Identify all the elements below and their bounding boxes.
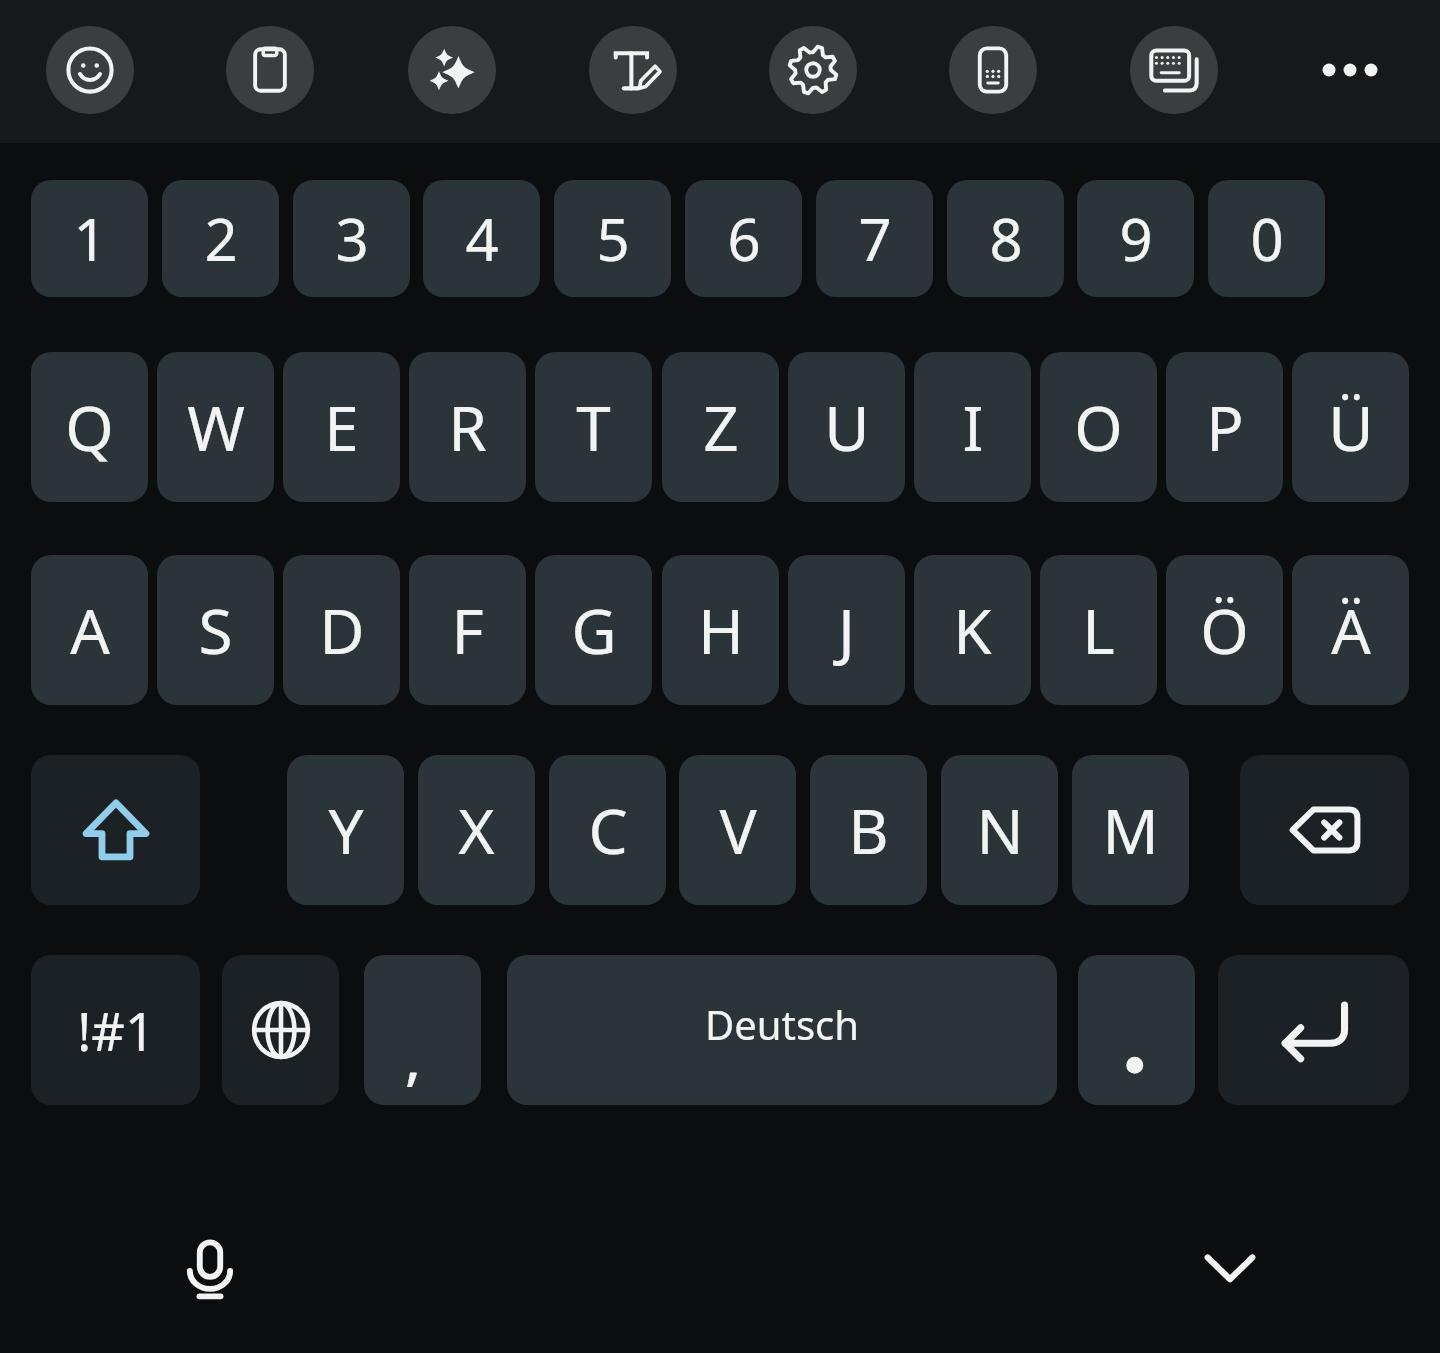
staticText: C [588, 788, 628, 872]
staticText: R [448, 385, 487, 469]
button[interactable]: , [364, 955, 481, 1105]
button[interactable]: J [788, 555, 905, 705]
button[interactable]: Voice input [154, 1214, 266, 1326]
button[interactable]: X [418, 755, 535, 905]
staticText: 2 [204, 199, 238, 278]
staticText: Q [65, 385, 114, 469]
button[interactable]: N [941, 755, 1058, 905]
button[interactable]: M [1072, 755, 1189, 905]
button[interactable]: Settings [769, 26, 857, 114]
button[interactable]: 9 [1077, 180, 1194, 297]
button[interactable]: 6 [685, 180, 802, 297]
staticText: D [319, 588, 365, 672]
staticText: 5 [596, 199, 630, 278]
button[interactable]: O [1040, 352, 1157, 502]
staticText: K [953, 588, 992, 672]
staticText: M [1102, 788, 1159, 872]
staticText: 0 [1250, 199, 1284, 278]
staticText: N [976, 788, 1024, 872]
staticText: F [451, 588, 484, 672]
staticText: J [838, 588, 855, 672]
staticText: B [848, 788, 889, 872]
button[interactable]: 5 [554, 180, 671, 297]
staticText: S [198, 588, 233, 672]
staticText: P [1206, 385, 1244, 469]
button[interactable]: Deutsch [507, 955, 1057, 1105]
button[interactable]: Y [287, 755, 404, 905]
button[interactable]: Ü [1292, 352, 1409, 502]
button[interactable]: 3 [293, 180, 410, 297]
button[interactable]: R [409, 352, 526, 502]
staticText: H [698, 588, 744, 672]
staticText: Ö [1200, 588, 1249, 672]
button[interactable]: G [535, 555, 652, 705]
button[interactable]: Hide keyboard [1174, 1212, 1286, 1324]
button[interactable]: Ä [1292, 555, 1409, 705]
staticText: 7 [858, 199, 892, 278]
staticText: Y [328, 788, 364, 872]
button[interactable]: Z [662, 352, 779, 502]
staticText: , [405, 1017, 421, 1096]
button[interactable]: 4 [423, 180, 540, 297]
button[interactable]: 1 [31, 180, 148, 297]
button[interactable]: D [283, 555, 400, 705]
button[interactable]: T [535, 352, 652, 502]
staticText: X [458, 788, 495, 872]
button[interactable]: 8 [947, 180, 1064, 297]
staticText: L [1082, 588, 1115, 672]
button[interactable]: E [283, 352, 400, 502]
button[interactable]: Ö [1166, 555, 1283, 705]
staticText: W [187, 385, 245, 469]
button[interactable]: More options [1306, 26, 1394, 114]
staticText: 6 [727, 199, 761, 278]
button[interactable]: I [914, 352, 1031, 502]
staticText: 1 [73, 199, 107, 278]
button[interactable]: W [157, 352, 274, 502]
staticText: Ä [1331, 588, 1371, 672]
button[interactable]: C [549, 755, 666, 905]
staticText: O [1074, 385, 1123, 469]
staticText: Deutsch [705, 997, 859, 1051]
button[interactable]: 0 [1208, 180, 1325, 297]
button[interactable]: L [1040, 555, 1157, 705]
button[interactable]: Emoji [46, 26, 134, 114]
button[interactable]: P [1166, 352, 1283, 502]
staticText: Ü [1328, 385, 1374, 469]
button[interactable]: Clipboard [226, 26, 314, 114]
button[interactable]: S [157, 555, 274, 705]
button[interactable]: Backspace [1240, 755, 1409, 905]
staticText: I [962, 385, 984, 469]
staticText: A [70, 588, 110, 672]
button[interactable]: Text editing [589, 26, 677, 114]
button[interactable]: Shift [31, 755, 200, 905]
button[interactable]: V [679, 755, 796, 905]
staticText: 4 [465, 199, 499, 278]
staticText: E [324, 385, 359, 469]
button[interactable]: One-handed mode [949, 26, 1037, 114]
button[interactable]: B [810, 755, 927, 905]
button[interactable]: Change language [222, 955, 339, 1105]
staticText: 9 [1119, 199, 1153, 278]
button[interactable]: A [31, 555, 148, 705]
staticText: 8 [989, 199, 1023, 278]
staticText: !#1 [77, 995, 155, 1066]
button[interactable]: H [662, 555, 779, 705]
button[interactable]: 2 [162, 180, 279, 297]
button[interactable]: Q [31, 352, 148, 502]
button[interactable]: F [409, 555, 526, 705]
staticText: 3 [335, 199, 369, 278]
staticText: Z [703, 385, 739, 469]
button[interactable]: AI suggestions [408, 26, 496, 114]
button[interactable]: U [788, 352, 905, 502]
staticText: T [576, 385, 611, 469]
button[interactable]: Switch keyboard [1130, 26, 1218, 114]
staticText: G [571, 588, 617, 672]
button[interactable] [1078, 955, 1195, 1105]
staticText: V [719, 788, 757, 872]
button[interactable]: K [914, 555, 1031, 705]
button[interactable]: Enter [1218, 955, 1409, 1105]
button[interactable]: 7 [816, 180, 933, 297]
button[interactable]: Symbols [31, 955, 200, 1105]
staticText: U [824, 385, 870, 469]
